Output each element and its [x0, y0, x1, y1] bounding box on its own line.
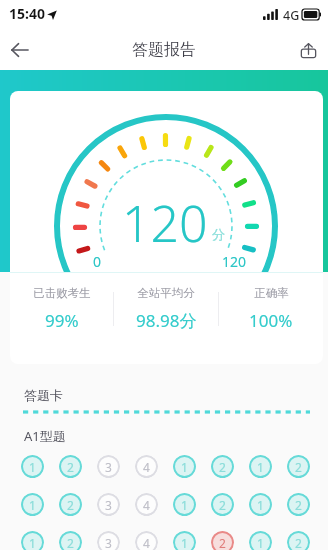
staticText: 98.98分 — [136, 309, 197, 332]
staticText: 3 — [105, 497, 112, 513]
staticText: 2 — [67, 535, 74, 550]
staticText: 2 — [295, 535, 302, 550]
staticText: 1 — [257, 497, 264, 513]
button[interactable]: 2 — [287, 531, 310, 550]
button[interactable]: 1 — [173, 455, 196, 478]
staticText: 100% — [249, 309, 293, 332]
button[interactable]: 4 — [135, 531, 158, 550]
button[interactable]: Back — [0, 30, 40, 70]
staticText: 4 — [143, 497, 150, 513]
staticText: 2 — [67, 497, 74, 513]
staticText: 2 — [295, 497, 302, 513]
button[interactable]: 2 — [59, 531, 82, 550]
staticText: 2 — [219, 497, 226, 513]
staticText: 正确率 — [254, 286, 289, 300]
button[interactable]: 2 — [211, 455, 234, 478]
staticText: 1 — [29, 459, 36, 475]
staticText: 4 — [143, 535, 150, 550]
staticText: 1 — [181, 497, 188, 513]
staticText: 1 — [257, 535, 264, 550]
button[interactable]: 2 — [211, 493, 234, 516]
button[interactable]: 1 — [21, 531, 44, 550]
staticText: 4 — [143, 459, 150, 475]
staticText: 1 — [257, 459, 264, 475]
button[interactable]: 1 — [173, 531, 196, 550]
button[interactable]: 4 — [135, 493, 158, 516]
button[interactable]: 1 — [21, 493, 44, 516]
staticText: 全站平均分 — [137, 286, 195, 300]
staticText: 1 — [181, 535, 188, 550]
staticText: 分 — [212, 226, 225, 242]
staticText: 答题报告 — [132, 40, 196, 60]
button[interactable]: 3 — [97, 531, 120, 550]
staticText: 2 — [219, 459, 226, 475]
button[interactable]: 2 — [211, 531, 234, 550]
staticText: A1型题 — [24, 427, 66, 445]
staticText: 0 — [93, 252, 102, 271]
staticText: 2 — [295, 459, 302, 475]
button[interactable]: 1 — [249, 455, 272, 478]
staticText: 3 — [105, 459, 112, 475]
button[interactable]: Share — [288, 30, 328, 70]
staticText: 答题卡 — [24, 387, 63, 403]
button[interactable]: 1 — [21, 455, 44, 478]
staticText: 120 — [222, 252, 247, 271]
staticText: 已击败考生 — [33, 286, 91, 300]
button[interactable]: 2 — [59, 493, 82, 516]
button[interactable]: 1 — [173, 493, 196, 516]
staticText: 99% — [45, 309, 79, 332]
staticText: 1 — [181, 459, 188, 475]
button[interactable]: 3 — [97, 493, 120, 516]
staticText: 1 — [29, 535, 36, 550]
staticText: 15:40 — [9, 4, 45, 23]
button[interactable]: 4 — [135, 455, 158, 478]
button[interactable]: 1 — [249, 493, 272, 516]
staticText: 120 — [122, 189, 208, 257]
staticText: 4G — [283, 7, 300, 24]
button[interactable]: 1 — [249, 531, 272, 550]
button[interactable]: 3 — [97, 455, 120, 478]
staticText: 3 — [105, 535, 112, 550]
button[interactable]: 2 — [59, 455, 82, 478]
button[interactable]: 2 — [287, 493, 310, 516]
button[interactable]: 2 — [287, 455, 310, 478]
staticText: 1 — [29, 497, 36, 513]
staticText: 2 — [67, 459, 74, 475]
staticText: 2 — [219, 535, 226, 550]
